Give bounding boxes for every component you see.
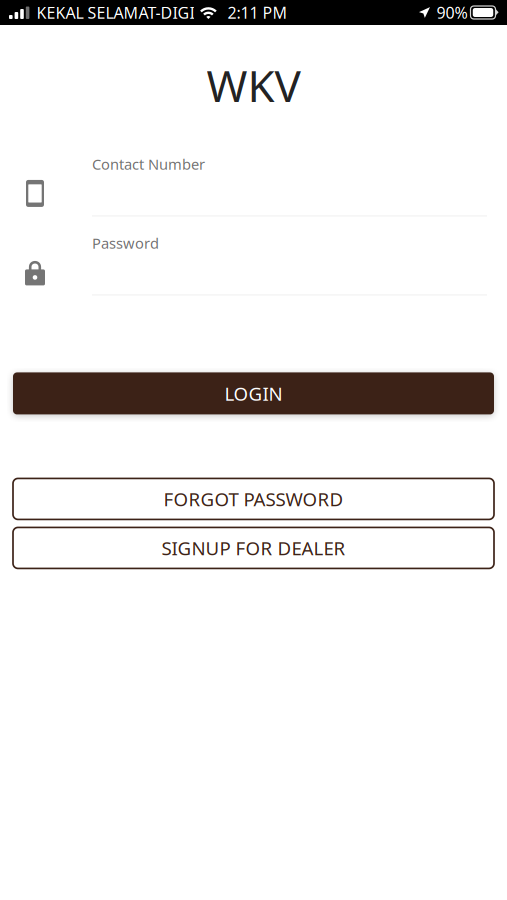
staticText: 2:11 PM	[227, 2, 287, 23]
staticText: SIGNUP FOR DEALER	[161, 535, 345, 560]
staticText: Password	[92, 233, 159, 253]
staticText: WKV	[206, 56, 300, 114]
staticText: FORGOT PASSWORD	[163, 486, 343, 511]
button[interactable]: LOGIN	[13, 372, 494, 414]
button[interactable]: FORGOT PASSWORD	[13, 478, 494, 519]
button[interactable]: SIGNUP FOR DEALER	[13, 527, 494, 568]
staticText: KEKAL SELAMAT-DIGI	[36, 2, 194, 23]
staticText: LOGIN	[224, 381, 282, 406]
staticText: 90%	[436, 2, 467, 23]
staticText: Contact Number	[92, 154, 205, 174]
